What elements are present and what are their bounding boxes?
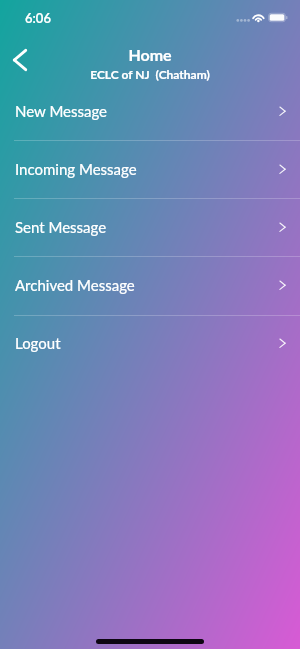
button[interactable]: Logout bbox=[0, 314, 300, 372]
staticText: Home bbox=[128, 45, 172, 64]
staticText: Archived Message bbox=[15, 276, 135, 294]
staticText: 6:06 bbox=[25, 10, 51, 26]
staticText: New Message bbox=[15, 102, 108, 120]
staticText: Logout bbox=[15, 334, 61, 352]
staticText: Incoming Message bbox=[15, 160, 137, 178]
button[interactable]: Incoming Message bbox=[0, 140, 300, 198]
staticText: ECLC of NJ (Chatham) bbox=[90, 67, 210, 81]
staticText: Sent Message bbox=[15, 218, 107, 236]
button[interactable]: New Message bbox=[0, 82, 300, 140]
button[interactable]: Sent Message bbox=[0, 198, 300, 256]
button[interactable]: Back bbox=[2, 36, 40, 84]
button[interactable]: Archived Message bbox=[0, 256, 300, 314]
